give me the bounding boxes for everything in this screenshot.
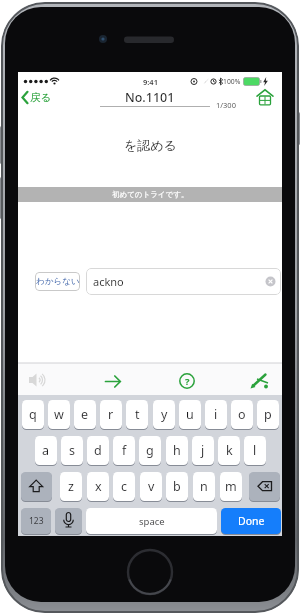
button[interactable]: n (193, 472, 215, 501)
button[interactable]: s (61, 436, 83, 465)
button[interactable]: m (220, 472, 242, 501)
staticText: f (122, 442, 127, 459)
button[interactable] (102, 370, 124, 392)
staticText: t (135, 406, 140, 423)
button[interactable]: o (231, 400, 253, 429)
button[interactable]: u (179, 400, 201, 429)
staticText: y (161, 406, 168, 423)
button[interactable]: わからない (35, 272, 80, 291)
button[interactable]: f (113, 436, 135, 465)
button[interactable]: g (139, 436, 161, 465)
button[interactable] (249, 472, 280, 501)
button[interactable] (249, 370, 271, 392)
button[interactable]: d (87, 436, 109, 465)
staticText: w (54, 406, 64, 423)
button[interactable]: i (205, 400, 227, 429)
staticText: 初めてのトライです。 (112, 190, 189, 199)
staticText: m (225, 478, 237, 495)
button[interactable] (255, 87, 275, 107)
staticText: s (69, 442, 75, 459)
staticText: p (264, 406, 272, 423)
button[interactable]: ? (176, 370, 198, 392)
staticText: space (139, 515, 165, 528)
button[interactable] (21, 472, 52, 501)
staticText: No.1101 (125, 89, 175, 106)
button[interactable]: y (153, 400, 175, 429)
staticText: わからない (36, 276, 80, 287)
button[interactable]: b (166, 472, 188, 501)
staticText: o (238, 406, 246, 423)
staticText: 123 (29, 515, 44, 527)
staticText: 1/300 (216, 100, 236, 110)
button[interactable]: e (74, 400, 96, 429)
button[interactable]: k (218, 436, 240, 465)
staticText: z (68, 478, 74, 495)
button[interactable]: ackno (86, 268, 281, 295)
button[interactable]: w (48, 400, 70, 429)
button[interactable]: l (244, 436, 266, 465)
button[interactable]: t (126, 400, 148, 429)
button[interactable]: c (113, 472, 135, 501)
staticText: 戻る (30, 91, 52, 104)
staticText: ? (185, 375, 190, 388)
staticText: 9:41 (143, 77, 158, 87)
staticText: x (95, 478, 102, 495)
button[interactable]: v (140, 472, 162, 501)
staticText: a (42, 442, 50, 459)
staticText: i (214, 406, 218, 423)
button[interactable]: Done (221, 508, 281, 534)
staticText: d (94, 442, 102, 459)
button[interactable]: q (22, 400, 44, 429)
button[interactable]: z (60, 472, 82, 501)
button[interactable]: p (257, 400, 279, 429)
button[interactable]: space (86, 508, 217, 534)
staticText: g (146, 442, 154, 459)
staticText: を認める (124, 137, 177, 153)
staticText: Done (238, 514, 265, 528)
staticText: ackno (93, 274, 124, 289)
staticText: e (81, 406, 89, 423)
button[interactable]: 戻る (20, 88, 60, 107)
staticText: b (173, 478, 181, 495)
staticText: k (226, 442, 233, 459)
staticText: u (186, 406, 194, 423)
staticText: l (253, 442, 257, 459)
staticText: c (121, 478, 128, 495)
staticText: 100% (223, 77, 241, 86)
button[interactable]: a (35, 436, 57, 465)
staticText: h (173, 442, 181, 459)
button[interactable]: r (100, 400, 122, 429)
button[interactable]: 123 (21, 508, 51, 534)
button[interactable] (55, 508, 82, 534)
button[interactable] (26, 368, 50, 392)
staticText: q (29, 406, 37, 423)
button[interactable]: h (166, 436, 188, 465)
button[interactable]: j (192, 436, 214, 465)
staticText: j (201, 442, 205, 459)
button[interactable]: x (87, 472, 109, 501)
staticText: v (148, 478, 155, 495)
staticText: r (108, 406, 114, 423)
staticText: n (200, 478, 208, 495)
